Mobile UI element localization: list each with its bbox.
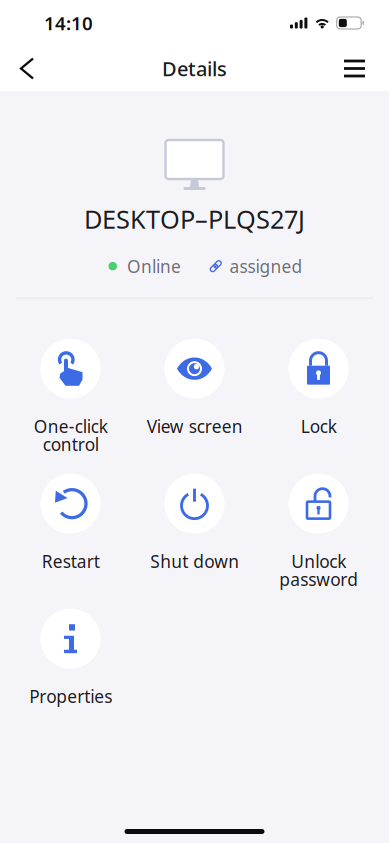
staticText: Restart: [41, 550, 99, 573]
button[interactable]: Lock: [262, 339, 374, 474]
staticText: 14:10: [44, 11, 93, 35]
staticText: View screen: [146, 415, 242, 438]
button[interactable]: One-click control: [14, 339, 126, 474]
staticText: One-click control: [33, 415, 107, 456]
button[interactable]: Unlock password: [262, 474, 374, 609]
staticText: Unlock password: [279, 550, 358, 591]
staticText: Online: [127, 255, 181, 278]
button[interactable]: Properties: [14, 609, 126, 744]
staticText: Shut down: [150, 550, 239, 573]
staticText: DESKTOP–PLQS27J: [84, 202, 305, 236]
button[interactable]: Restart: [14, 474, 126, 609]
button[interactable]: Back: [0, 46, 49, 90]
button[interactable]: Menu: [326, 46, 389, 91]
staticText: assigned: [229, 255, 302, 278]
button[interactable]: View screen: [138, 339, 250, 474]
staticText: Lock: [300, 415, 336, 438]
button[interactable]: Shut down: [138, 474, 250, 609]
staticText: Details: [162, 55, 227, 82]
staticText: Properties: [29, 685, 112, 708]
